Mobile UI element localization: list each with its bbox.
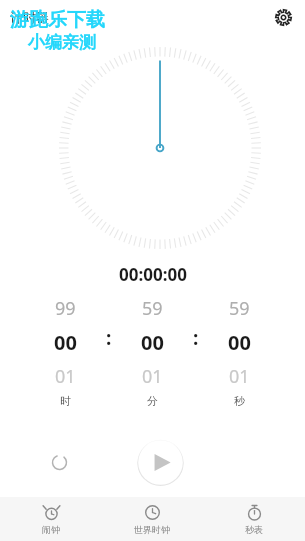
staticText: 世界时钟 [134, 524, 170, 535]
button[interactable]: 闹钟 [0, 497, 101, 541]
button[interactable]: 秒表 [203, 497, 305, 541]
staticText: 00 [141, 329, 164, 356]
staticText: 01 [142, 364, 163, 389]
staticText: 01 [229, 364, 250, 389]
staticText: 99 [55, 296, 76, 321]
staticText: 计时器 [10, 9, 49, 25]
button[interactable]: Start [137, 439, 184, 486]
staticText: 00 [54, 329, 77, 356]
staticText: 小编亲测 [28, 32, 96, 53]
button[interactable]: 59 [204, 296, 275, 408]
staticText: : [106, 325, 112, 351]
staticText: : [193, 325, 199, 351]
staticText: 59 [142, 296, 163, 321]
staticText: 秒表 [245, 524, 263, 535]
staticText: 游跑乐下载 [10, 8, 105, 32]
button[interactable]: 59 [117, 296, 188, 408]
button[interactable]: Reset [42, 445, 76, 479]
button[interactable]: 世界时钟 [101, 497, 203, 541]
staticText: 59 [229, 296, 250, 321]
staticText: 00 [228, 329, 251, 356]
button[interactable]: 99 [30, 296, 101, 408]
staticText: 秒 [234, 394, 245, 408]
staticText: 01 [55, 364, 76, 389]
staticText: 闹钟 [42, 524, 60, 535]
staticText: 分 [147, 394, 158, 408]
button[interactable]: Settings [269, 3, 297, 31]
staticText: 时 [60, 394, 71, 408]
staticText: 00:00:00 [119, 263, 187, 286]
